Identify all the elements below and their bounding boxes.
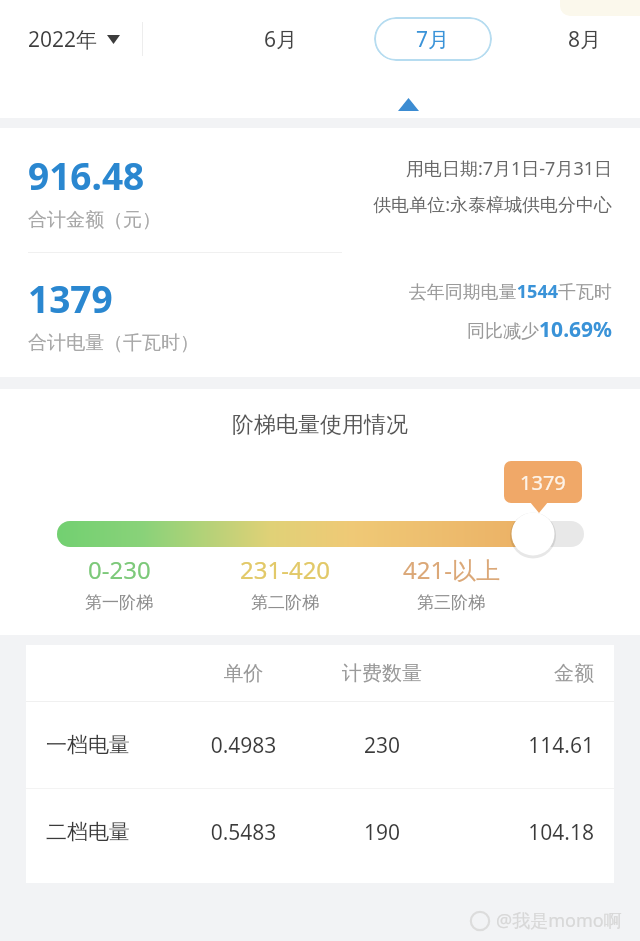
button[interactable]: 2022年 bbox=[0, 17, 130, 62]
staticText: 合计金额（元） bbox=[28, 208, 161, 232]
staticText: 231-420 bbox=[240, 553, 331, 586]
staticText: 421-以上 bbox=[403, 553, 500, 586]
staticText: 一档电量 bbox=[46, 732, 182, 758]
staticText: 同比减少10.69% bbox=[303, 315, 612, 344]
staticText: 6月 bbox=[264, 25, 298, 54]
button[interactable]: 6月 bbox=[242, 15, 320, 64]
staticText: 合计电量（千瓦时） bbox=[28, 331, 199, 355]
staticText: 1379 bbox=[28, 273, 113, 323]
staticText: @我是momo啊 bbox=[496, 908, 622, 933]
staticText: 二档电量 bbox=[46, 819, 182, 845]
staticText: 114.61 bbox=[459, 731, 594, 760]
staticText: 104.18 bbox=[459, 818, 594, 847]
staticText: 7月 bbox=[416, 25, 450, 54]
staticText: 第二阶梯 bbox=[251, 592, 319, 613]
staticText: 单价 bbox=[182, 661, 305, 686]
staticText: 2022年 bbox=[28, 25, 98, 54]
button[interactable]: 二档电量 bbox=[26, 789, 614, 875]
staticText: 第一阶梯 bbox=[85, 592, 153, 613]
staticText: 1379 bbox=[520, 469, 566, 496]
staticText: 计费数量 bbox=[305, 661, 459, 686]
staticText: 0-230 bbox=[88, 553, 151, 586]
staticText: 阶梯电量使用情况 bbox=[0, 411, 640, 439]
staticText: 190 bbox=[305, 818, 459, 847]
button[interactable]: 8月 bbox=[546, 15, 624, 64]
staticText: 金额 bbox=[459, 661, 594, 686]
button[interactable]: 一档电量 bbox=[26, 702, 614, 788]
button[interactable]: 7月 bbox=[374, 17, 492, 61]
staticText: 供电单位:永泰樟城供电分中心 bbox=[373, 192, 612, 217]
staticText: 用电日期:7月1日-7月31日 bbox=[405, 156, 612, 181]
staticText: 230 bbox=[305, 731, 459, 760]
staticText: 8月 bbox=[568, 25, 602, 54]
staticText: 0.4983 bbox=[182, 731, 305, 760]
staticText: 0.5483 bbox=[182, 818, 305, 847]
staticText: 去年同期电量1544千瓦时 bbox=[303, 279, 612, 304]
staticText: 第三阶梯 bbox=[417, 592, 485, 613]
staticText: 916.48 bbox=[28, 150, 145, 200]
